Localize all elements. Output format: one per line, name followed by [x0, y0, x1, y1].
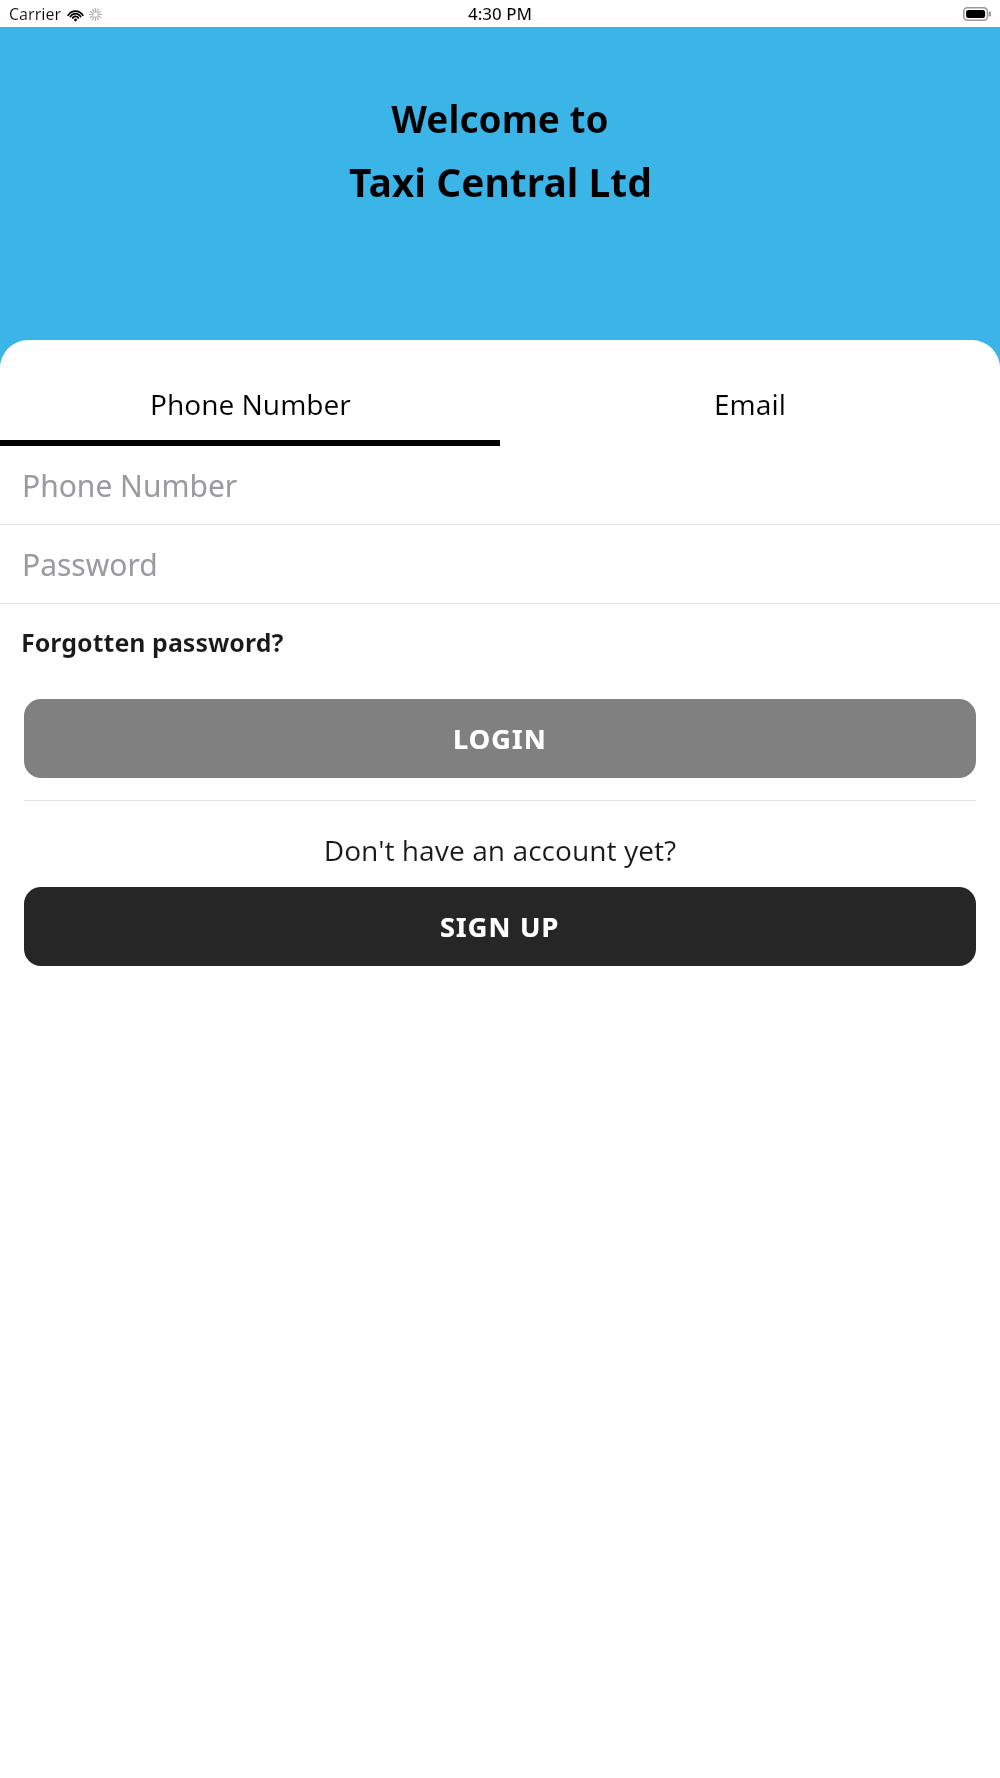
staticText: Phone Number	[22, 465, 238, 506]
staticText: Email	[714, 385, 786, 423]
staticText: Don't have an account yet?	[0, 831, 1000, 869]
button[interactable]: Password	[0, 525, 1000, 603]
staticText: 4:30 PM	[468, 2, 533, 25]
staticText: Taxi Central Ltd	[349, 155, 652, 208]
button[interactable]: Phone Number	[0, 446, 1000, 524]
button[interactable]: Email	[500, 368, 1000, 440]
staticText: SIGN UP	[440, 908, 560, 945]
staticText: Phone Number	[150, 385, 351, 423]
staticText: Password	[22, 544, 158, 585]
staticText: Forgotten password?	[21, 625, 284, 659]
button[interactable]: Phone Number	[0, 368, 500, 440]
button[interactable]: SIGN UP	[24, 887, 976, 966]
button[interactable]: Forgotten password?	[0, 604, 1000, 673]
staticText: Carrier	[9, 3, 62, 25]
staticText: LOGIN	[453, 720, 547, 757]
staticText: Welcome to	[391, 93, 609, 143]
button[interactable]: LOGIN	[24, 699, 976, 778]
